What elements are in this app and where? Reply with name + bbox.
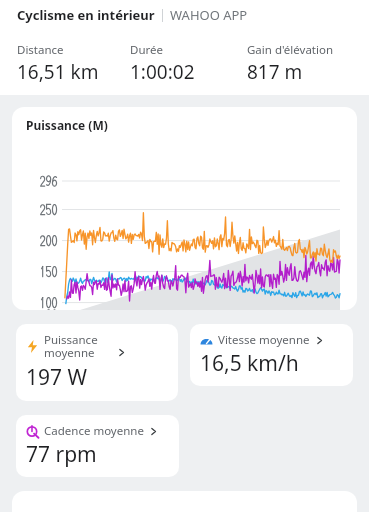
button[interactable]: Cadence moyenne xyxy=(16,415,179,477)
staticText: 197 W xyxy=(26,363,88,392)
staticText: Cadence moyenne xyxy=(44,423,144,439)
button[interactable]: Vitesse moyenne xyxy=(190,324,353,386)
staticText: Puissance (M) xyxy=(26,117,108,133)
staticText: Puissance moyenne xyxy=(44,332,98,361)
staticText: Gain d'élévation xyxy=(247,42,334,58)
staticText: Cyclisme en intérieur xyxy=(17,6,155,24)
staticText: Distance xyxy=(17,42,64,58)
staticText: WAHOO APP xyxy=(170,6,248,24)
staticText: 817 m xyxy=(247,59,303,85)
staticText: 16,51 km xyxy=(17,59,99,85)
staticText: Vitesse moyenne xyxy=(218,332,310,348)
staticText: 77 rpm xyxy=(26,440,97,469)
staticText: 16,5 km/h xyxy=(200,349,299,378)
button[interactable]: Puissance moyenne xyxy=(16,324,178,401)
staticText: Durée xyxy=(130,42,163,58)
staticText: 1:00:02 xyxy=(130,59,195,85)
